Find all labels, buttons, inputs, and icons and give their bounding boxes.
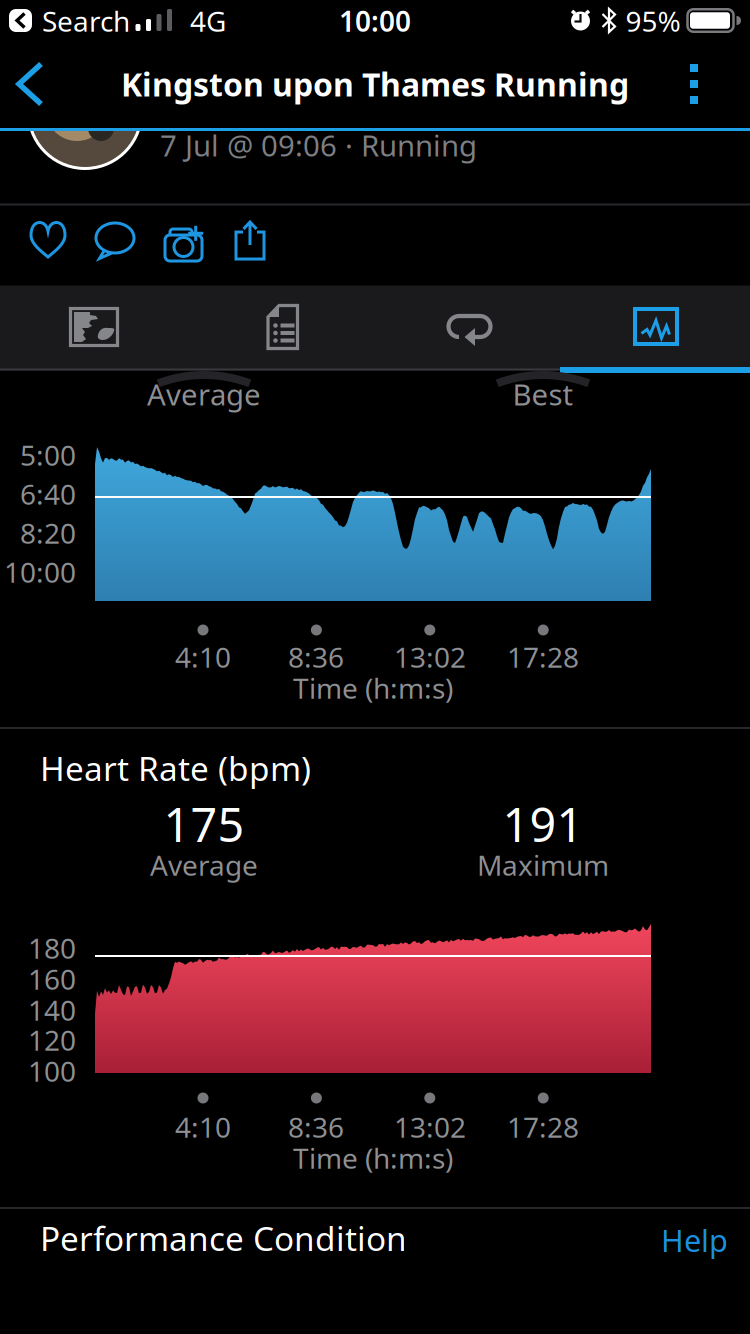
staticText: Time (h:m:s) bbox=[293, 669, 453, 707]
staticText: 10:00 bbox=[339, 2, 411, 40]
staticText: 4G bbox=[190, 2, 226, 40]
button[interactable]: Laps bbox=[379, 287, 559, 367]
staticText: 120 bbox=[28, 1021, 76, 1059]
staticText: Best bbox=[512, 374, 573, 413]
staticText: 4:10 bbox=[175, 638, 231, 676]
staticText: 5:00 bbox=[20, 436, 76, 474]
staticText: 175 bbox=[163, 793, 244, 855]
staticText: Performance Condition bbox=[40, 1216, 407, 1260]
button[interactable]: Share bbox=[220, 213, 280, 273]
staticText: 17:28 bbox=[507, 1108, 579, 1146]
button[interactable]: More bbox=[672, 60, 716, 108]
button[interactable]: Like bbox=[18, 213, 78, 273]
staticText: Average bbox=[147, 374, 261, 413]
button[interactable]: Comment bbox=[85, 213, 145, 273]
staticText: 7 Jul @ 09:06 · Running bbox=[160, 125, 477, 164]
staticText: Average bbox=[150, 846, 258, 884]
staticText: 13:02 bbox=[394, 638, 466, 676]
staticText: 191 bbox=[502, 793, 583, 855]
staticText: 160 bbox=[28, 960, 76, 998]
staticText: 180 bbox=[28, 929, 76, 967]
staticText: Heart Rate (bpm) bbox=[40, 746, 311, 790]
staticText: Help bbox=[661, 1220, 728, 1260]
staticText: 13:02 bbox=[394, 1108, 466, 1146]
button[interactable]: Help bbox=[608, 1220, 728, 1260]
staticText: 4:10 bbox=[175, 1108, 231, 1146]
staticText: Kingston upon Thames Running bbox=[121, 63, 629, 105]
button[interactable]: Back bbox=[11, 60, 55, 108]
staticText: 17:28 bbox=[507, 638, 579, 676]
staticText: 10:00 bbox=[4, 553, 76, 591]
staticText: 8:20 bbox=[20, 514, 76, 552]
staticText: 100 bbox=[28, 1052, 76, 1090]
staticText: 8:36 bbox=[288, 638, 344, 676]
staticText: Maximum bbox=[477, 846, 609, 884]
staticText: Search bbox=[42, 2, 130, 40]
button[interactable]: Charts bbox=[566, 287, 746, 367]
staticText: Time (h:m:s) bbox=[293, 1139, 453, 1177]
staticText: 6:40 bbox=[20, 475, 76, 513]
button[interactable]: Add Photo bbox=[153, 213, 215, 273]
staticText: 8:36 bbox=[288, 1108, 344, 1146]
button[interactable]: Back to Search bbox=[9, 4, 139, 37]
staticText: 140 bbox=[28, 991, 76, 1029]
button[interactable]: Photos bbox=[4, 287, 184, 367]
button[interactable]: Details bbox=[191, 287, 371, 367]
staticText: 95% bbox=[625, 2, 680, 40]
